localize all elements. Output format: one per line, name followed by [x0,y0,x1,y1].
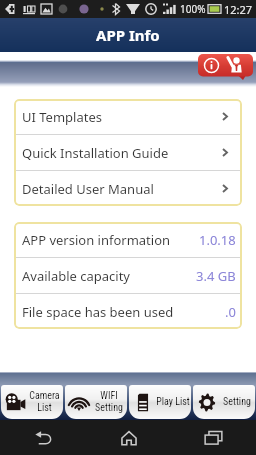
button[interactable]: UI Templates [14,99,242,134]
button[interactable]: WIFI [65,385,127,419]
button[interactable]: Home [86,420,171,455]
staticText: Available capacity [22,267,131,285]
staticText: Detailed User Manual [22,180,154,198]
staticText: 1.0.18 [199,231,236,249]
staticText: WIFI [100,390,118,402]
button[interactable]: Back [0,420,86,455]
button[interactable]: Detailed User Manual [14,171,242,206]
staticText: Setting [95,402,123,414]
staticText: 100% [180,2,206,16]
button[interactable]: Recent apps [171,420,256,455]
staticText: 3.4 GB [196,267,236,285]
staticText: UI Templates [22,108,102,126]
staticText: Camera [29,390,60,402]
staticText: .0 [225,303,236,321]
staticText: File space has been used [22,303,174,321]
staticText: Play List [156,396,190,408]
button[interactable]: Play List [129,385,191,419]
staticText: APP Info [96,25,160,45]
staticText: List [37,402,52,414]
staticText: APP version information [22,231,171,249]
staticText: Quick Installation Guide [22,144,169,162]
button[interactable]: Information [198,54,254,81]
button[interactable]: Quick Installation Guide [14,135,242,170]
button[interactable]: Setting [193,385,255,419]
staticText: Setting [223,396,251,408]
button[interactable]: Camera [1,385,63,419]
staticText: 12:27 [224,2,253,17]
